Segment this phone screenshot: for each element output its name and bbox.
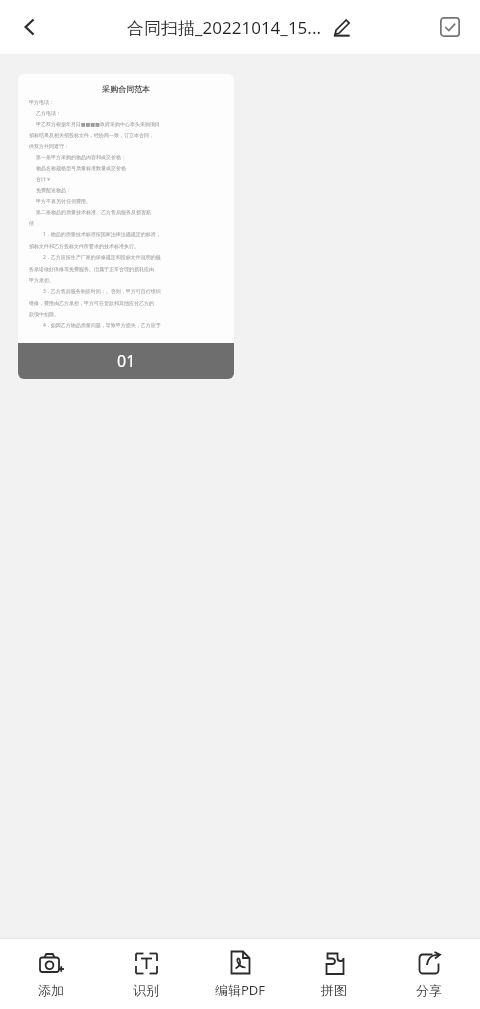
staticText: 01 (117, 350, 136, 372)
button[interactable]: 分享 (386, 945, 472, 1004)
button[interactable]: 编辑PDF (197, 944, 283, 1005)
staticText: 款项中扣除。 (29, 311, 223, 317)
staticText: 合计￥ (36, 176, 223, 182)
staticText: 第一条甲方采购的物品内容和成交价格： (36, 154, 223, 160)
staticText: 分享 (416, 982, 442, 998)
staticText: 2．乙方应按生产厂家的保修规定和投标文件说明的服 (43, 254, 223, 261)
button[interactable]: 识别 (103, 945, 189, 1004)
staticText: 拼图 (321, 982, 347, 998)
staticText: 维修，费用由乙方承担，甲方可在货款和其他应付乙方的 (29, 300, 223, 306)
button[interactable]: 添加 (8, 945, 94, 1004)
button[interactable]: 拼图 (291, 945, 377, 1004)
staticText: 合同扫描_20221014_15... (127, 16, 322, 39)
staticText: 添加 (38, 982, 64, 998)
button[interactable]: 采购合同范本 (18, 74, 234, 379)
staticText: 务承诺做好保修等免费服务。但属于正常合理的损耗应由 (29, 266, 223, 272)
staticText: 乙方电话： (36, 110, 223, 116)
staticText: 甲方承担。 (29, 277, 223, 283)
staticText: 采购合同范本 (29, 84, 223, 94)
staticText: 编辑PDF (215, 981, 266, 999)
staticText: 甲方不再另付任何费用。 (36, 198, 223, 204)
staticText: 偿 (29, 220, 223, 226)
staticText: 甲方电话： (29, 99, 223, 105)
staticText: 第二条物品的质量技术标准、乙方售后服务及损害赔 (36, 209, 223, 215)
staticText: 甲乙双方根据年月日■■■■政府采购中心牵头采购项目 (36, 121, 223, 127)
button[interactable]: Rename (328, 14, 354, 40)
staticText: 1．物品的质量技术标准按国家法律法规规定的标准， (43, 231, 223, 238)
staticText: 免费配送物品： (36, 187, 223, 193)
staticText: 供双方共同遵守： (29, 143, 223, 149)
staticText: 招标结果及相关招投标文件，经协商一致，订立本合同， (29, 132, 223, 138)
staticText: 招标文件和乙方投标文件所要求的技术标准执行。 (29, 243, 223, 249)
staticText: 4．如因乙方物品质量问题，导致甲方损失，乙方应予 (43, 322, 223, 329)
staticText: 识别 (133, 982, 159, 998)
button[interactable]: Back (6, 3, 54, 51)
staticText: 物品名称规格型号质量标准数量成交价格 (36, 165, 223, 171)
button[interactable]: Select all (428, 5, 472, 49)
staticText: 3．乙方售后服务响应时间：。否则，甲方可自行组织 (43, 288, 223, 295)
